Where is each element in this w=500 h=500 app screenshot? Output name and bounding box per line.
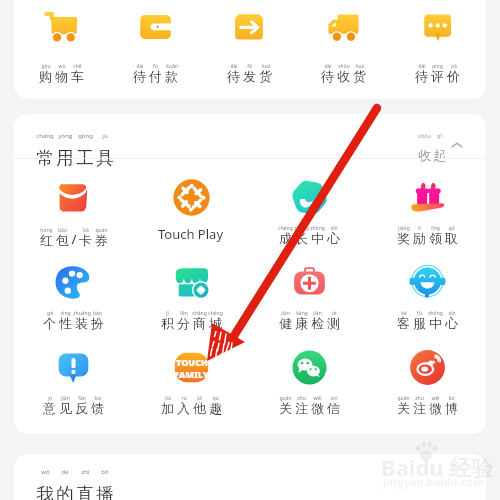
staticText: cè — [331, 310, 337, 317]
staticText: 的 — [56, 483, 74, 500]
staticText: 收 — [418, 147, 431, 163]
staticText: huò — [261, 63, 271, 70]
staticText: 趣 — [209, 400, 222, 416]
button[interactable]: jiǎng — [368, 179, 486, 259]
staticText: 收 — [337, 68, 350, 84]
staticText: kuì — [94, 395, 102, 402]
staticText: 待 — [415, 68, 428, 84]
staticText: shōu — [418, 132, 431, 138]
staticText: chéng — [208, 310, 223, 317]
staticText: 播 — [96, 483, 114, 500]
button[interactable]: dài — [202, 0, 296, 99]
button[interactable]: guān — [368, 349, 486, 429]
staticText: kāng — [296, 310, 308, 317]
staticText: kuǎn — [166, 63, 178, 70]
staticText: huò — [355, 63, 365, 70]
staticText: 心 — [445, 315, 458, 331]
staticText: 博 — [445, 400, 458, 416]
staticText: zhí — [81, 468, 90, 474]
button[interactable]: hóng — [14, 179, 132, 259]
staticText: 馈 — [91, 400, 104, 416]
button[interactable]: dài — [296, 0, 390, 99]
staticText: zhù — [415, 395, 424, 402]
staticText: 成 — [279, 230, 292, 246]
staticText: 个 — [43, 315, 56, 331]
staticText: 物 — [55, 68, 68, 84]
staticText: 扮 — [91, 315, 104, 331]
staticText: shōu — [338, 63, 350, 70]
staticText: 健 — [279, 315, 292, 331]
staticText: 货 — [353, 68, 366, 84]
staticText: bó — [448, 395, 455, 402]
staticText: 商 — [193, 315, 206, 331]
button[interactable]: kè — [368, 264, 486, 344]
staticText: 反 — [75, 400, 88, 416]
button[interactable]: guān — [250, 349, 368, 429]
staticText: 心 — [327, 230, 340, 246]
staticText: 性 — [59, 315, 72, 331]
staticText: 服 — [413, 315, 426, 331]
staticText: qù — [212, 395, 219, 402]
staticText: 励 — [413, 230, 426, 246]
button[interactable]: Touch Play — [132, 179, 250, 259]
staticText: 领 — [429, 230, 442, 246]
staticText: quàn — [95, 227, 108, 234]
staticText: 分 — [177, 315, 190, 331]
staticText: 车 — [71, 68, 84, 84]
staticText: 注 — [413, 400, 426, 416]
staticText: bō — [101, 468, 109, 474]
staticText: guān — [279, 395, 292, 402]
staticText: 购 — [39, 68, 52, 84]
staticText: xīn — [330, 225, 338, 232]
button[interactable]: shōu — [417, 132, 463, 154]
staticText: dài — [418, 63, 426, 70]
staticText: zhǎng — [294, 225, 309, 232]
staticText: jià — [451, 63, 457, 70]
staticText: fù — [153, 63, 158, 70]
button[interactable]: gòu — [14, 0, 108, 99]
staticText: rù — [181, 395, 187, 402]
staticText: fú — [417, 310, 422, 317]
staticText: dài — [324, 63, 332, 70]
button[interactable]: dài — [390, 0, 484, 99]
staticText: 奖 — [397, 230, 410, 246]
button[interactable]: yì — [14, 349, 132, 429]
staticText: 注 — [295, 400, 308, 416]
staticText: 检 — [311, 315, 324, 331]
staticText: gè — [47, 310, 53, 317]
staticText: 入 — [177, 400, 190, 416]
staticText: guān — [397, 395, 410, 402]
button[interactable]: jī — [132, 264, 250, 344]
staticText: 见 — [59, 400, 72, 416]
staticText: zhōng — [310, 225, 325, 232]
staticText: wǒ — [41, 468, 50, 474]
staticText: 长 — [295, 230, 308, 246]
staticText: 我 — [36, 483, 54, 500]
button[interactable]: TOUCH — [132, 349, 250, 429]
staticText: cháng — [36, 132, 54, 138]
staticText: zhōng — [428, 310, 443, 317]
button[interactable]: chéng — [250, 179, 368, 259]
staticText: 货 — [259, 68, 272, 84]
staticText: fēn — [180, 310, 188, 317]
staticText: 券 — [95, 232, 108, 248]
staticText: jiǎng — [398, 225, 410, 232]
staticText: 具 — [96, 147, 114, 169]
staticText: 测 — [327, 315, 340, 331]
staticText: 信 — [327, 400, 340, 416]
staticText: zhù — [297, 395, 306, 402]
button[interactable]: gè — [14, 264, 132, 344]
staticText: yì — [48, 395, 52, 402]
staticText: wēi — [313, 395, 322, 402]
staticText: jingyan.baidu.com — [383, 474, 485, 489]
button[interactable]: jiàn — [250, 264, 368, 344]
button[interactable]: dài — [108, 0, 202, 99]
staticText: jiǎn — [313, 310, 322, 317]
staticText: jiā — [165, 395, 171, 402]
staticText: 待 — [227, 68, 240, 84]
staticText: 包 — [56, 232, 69, 248]
staticText: 装 — [75, 315, 88, 331]
staticText: 卡 — [79, 232, 92, 248]
staticText: 用 — [56, 147, 74, 169]
staticText: bāo — [58, 227, 67, 234]
